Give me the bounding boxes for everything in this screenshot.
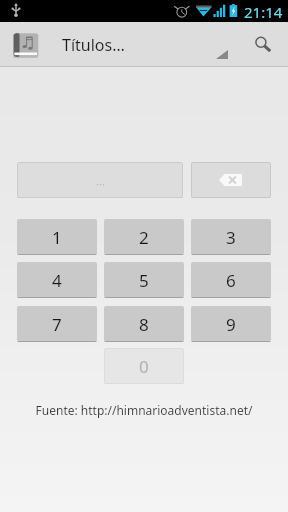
- button[interactable]: 4: [17, 262, 97, 298]
- button[interactable]: Delete: [191, 162, 271, 198]
- staticText: Títulos…: [62, 34, 125, 56]
- button[interactable]: ···: [17, 162, 183, 198]
- button[interactable]: 9: [191, 306, 271, 342]
- staticText: 21:14: [244, 2, 283, 22]
- staticText: 3: [226, 226, 236, 249]
- staticText: 6: [226, 269, 236, 292]
- button[interactable]: 8: [104, 306, 184, 342]
- staticText: 5: [139, 269, 149, 292]
- staticText: 1: [52, 226, 62, 249]
- staticText: 4: [52, 269, 62, 292]
- button[interactable]: Títulos…: [0, 22, 288, 67]
- staticText: 8: [139, 313, 149, 336]
- button[interactable]: 0: [104, 348, 184, 384]
- button[interactable]: 5: [104, 262, 184, 298]
- staticText: Fuente: http://himnarioadventista.net/: [0, 402, 288, 418]
- staticText: 9: [226, 313, 236, 336]
- button[interactable]: 2: [104, 219, 184, 255]
- staticText: 0: [139, 355, 149, 378]
- button[interactable]: Search: [240, 22, 288, 67]
- staticText: ···: [96, 176, 105, 191]
- button[interactable]: 7: [17, 306, 97, 342]
- staticText: 7: [52, 313, 62, 336]
- button[interactable]: 3: [191, 219, 271, 255]
- staticText: 2: [139, 226, 149, 249]
- button[interactable]: 1: [17, 219, 97, 255]
- button[interactable]: 6: [191, 262, 271, 298]
